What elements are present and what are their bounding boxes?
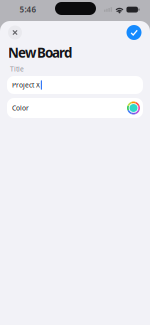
- staticText: Title: [10, 65, 24, 73]
- staticText: 5:46: [19, 4, 36, 15]
- button[interactable]: Done: [126, 25, 141, 40]
- button[interactable]: Color: [7, 98, 143, 118]
- staticText: Color: [12, 104, 29, 112]
- staticText: Project X: [12, 81, 40, 89]
- staticText: New Board: [8, 44, 72, 61]
- button[interactable]: Close: [8, 25, 22, 39]
- button[interactable]: Project X: [7, 76, 143, 94]
